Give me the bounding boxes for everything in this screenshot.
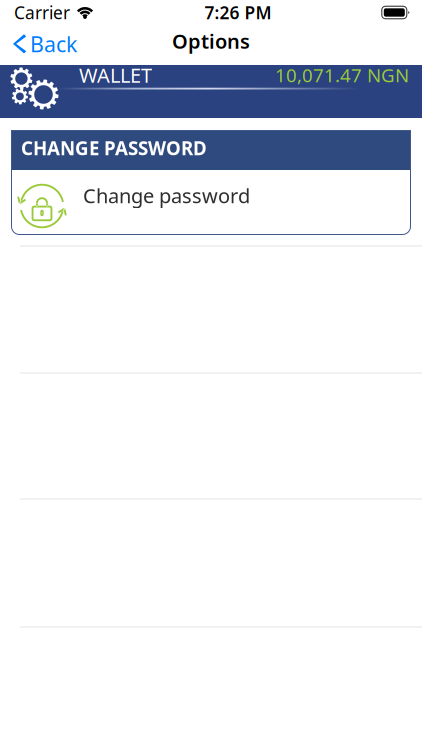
staticText: Back [30,30,77,58]
button[interactable]: Change password [11,170,411,235]
staticText: Carrier [14,1,70,24]
staticText: 10,071.47 NGN [275,63,409,87]
staticText: 7:26 PM [204,1,271,24]
staticText: CHANGE PASSWORD [21,136,207,160]
staticText: WALLET [79,62,152,88]
button[interactable]: Back [0,27,112,61]
staticText: Change password [83,182,250,209]
staticText: Options [172,28,250,54]
